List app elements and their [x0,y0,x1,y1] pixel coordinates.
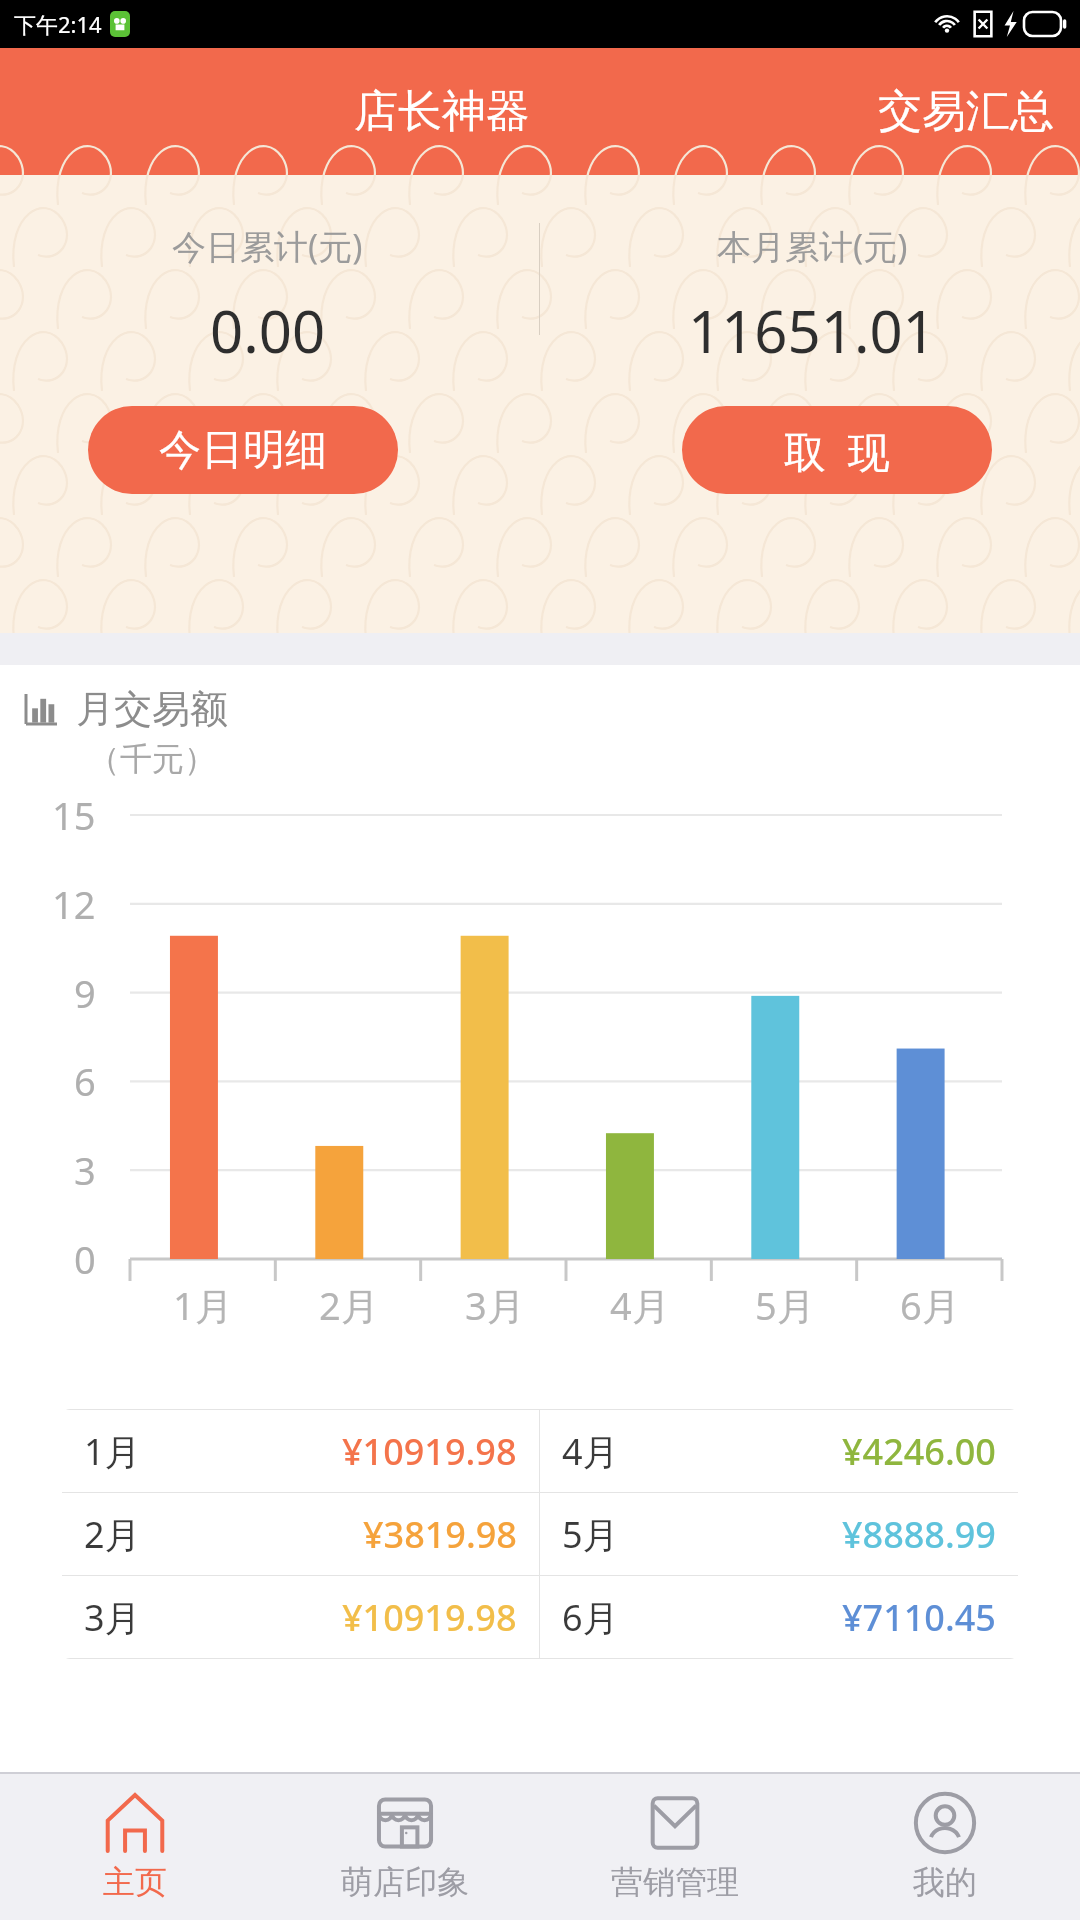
button[interactable]: 1月 [62,1410,539,1492]
staticText: 5月 [755,1279,815,1331]
staticText: 0.00 [210,291,326,370]
button[interactable]: 3月 [62,1576,539,1658]
staticText: 交易汇总 [878,84,1054,139]
button[interactable]: 6月 [540,1576,1018,1658]
staticText: 6月 [562,1593,619,1642]
other: 营销管理 [644,1792,706,1854]
staticText: 12 [52,878,96,930]
staticText: 15 [52,789,96,841]
staticText: 主页 [103,1862,167,1902]
button[interactable]: 交易汇总 [852,66,1080,157]
staticText: （千元） [88,739,216,779]
other: 我的 [914,1792,976,1854]
staticText: ¥8888.99 [842,1510,996,1559]
staticText: 1月 [84,1427,141,1476]
staticText: ¥7110.45 [842,1593,996,1642]
staticText: 萌店印象 [341,1862,469,1902]
staticText: 3 [74,1144,96,1196]
staticText: 4月 [610,1279,670,1331]
staticText: 营销管理 [611,1862,739,1902]
staticText: 今日累计(元) [172,223,363,269]
staticText: 今日明细 [159,424,327,477]
button[interactable]: 5月 [540,1493,1018,1575]
button[interactable]: 2月 [62,1493,539,1575]
staticText: 店长神器 [354,84,530,139]
staticText: 3月 [465,1279,525,1331]
button[interactable]: 主页 [0,1774,270,1920]
staticText: 本月累计(元) [717,223,908,269]
staticText: 取 现 [784,422,890,479]
staticText: ¥10919.98 [342,1427,517,1476]
button[interactable]: 营销管理 [540,1774,810,1920]
staticText: 2月 [84,1510,141,1559]
button[interactable]: 4月 [540,1410,1018,1492]
staticText: 9 [74,967,96,1019]
staticText: 11651.01 [688,291,936,370]
other: 萌店印象 [374,1792,436,1854]
staticText: 6 [74,1055,96,1107]
button[interactable]: 萌店印象 [270,1774,540,1920]
button[interactable]: 今日明细 [88,406,398,494]
button[interactable]: 我的 [810,1774,1080,1920]
staticText: ¥10919.98 [342,1593,517,1642]
staticText: 5月 [562,1510,619,1559]
staticText: 0 [74,1233,96,1285]
staticText: 3月 [84,1593,141,1642]
staticText: 2月 [319,1279,379,1331]
staticText: 我的 [913,1862,977,1902]
staticText: ¥3819.98 [363,1510,517,1559]
staticText: 下午2:14 [14,9,102,39]
staticText: 4月 [562,1427,619,1476]
button[interactable]: 取 现 [682,406,992,494]
staticText: 1月 [173,1279,233,1331]
other: 主页 [104,1792,166,1854]
staticText: 6月 [900,1279,960,1331]
staticText: ¥4246.00 [842,1427,996,1476]
staticText: 月交易额 [76,685,228,733]
